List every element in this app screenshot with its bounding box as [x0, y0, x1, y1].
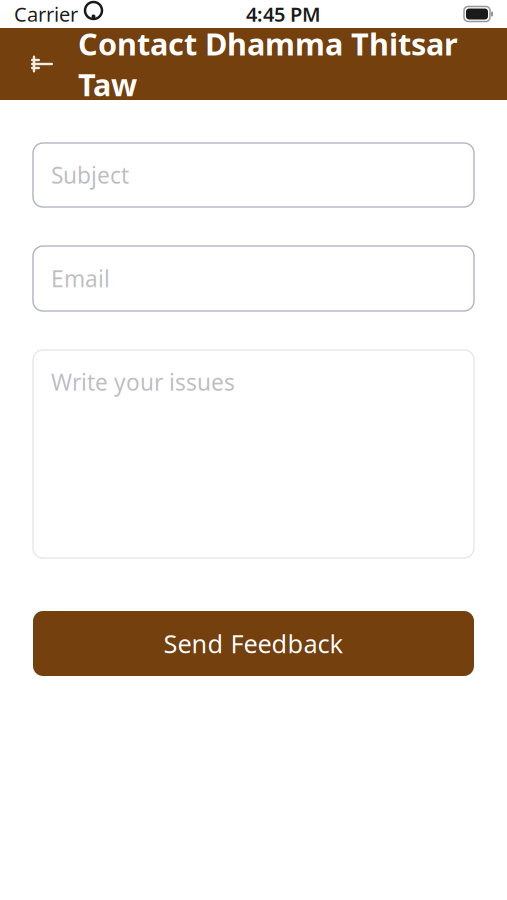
- staticText: Carrier: [14, 1, 78, 27]
- button[interactable]: Email: [33, 246, 474, 311]
- button[interactable]: Subject: [33, 143, 474, 207]
- button[interactable]: Back: [18, 40, 66, 88]
- staticText: Subject: [51, 160, 129, 190]
- staticText: Contact Dhamma Thitsar Taw: [78, 23, 458, 105]
- button[interactable]: Send Feedback: [33, 611, 474, 676]
- button[interactable]: Write your issues: [33, 350, 474, 558]
- staticText: 4:45 PM: [246, 1, 321, 27]
- staticText: Write your issues: [51, 367, 235, 397]
- staticText: Send Feedback: [163, 627, 343, 660]
- staticText: Email: [51, 263, 110, 293]
